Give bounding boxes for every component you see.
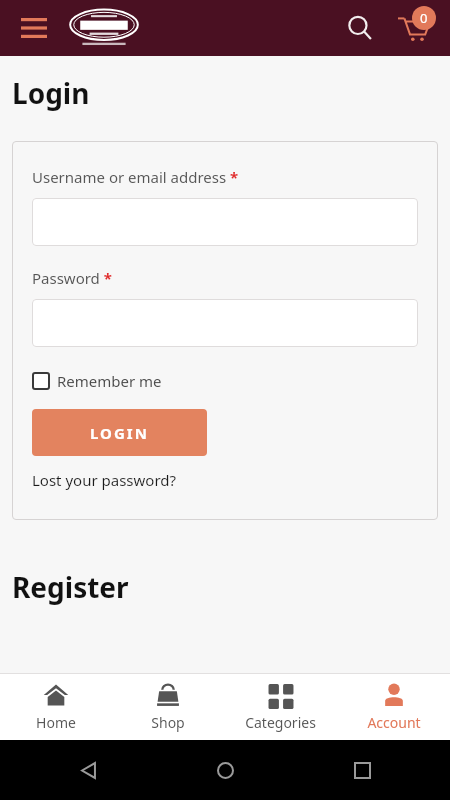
- button[interactable]: Recent apps: [344, 752, 380, 788]
- button[interactable]: Cart, 0 items: [390, 4, 438, 52]
- staticText: Home: [36, 713, 76, 732]
- button[interactable]: Categories: [224, 674, 337, 740]
- button[interactable]: [32, 299, 418, 347]
- staticText: Categories: [245, 713, 316, 732]
- staticText: Account: [367, 713, 421, 732]
- button[interactable]: Shop: [112, 674, 224, 740]
- staticText: Register: [12, 568, 129, 606]
- staticText: 0: [420, 9, 428, 27]
- staticText: Username or email address *: [32, 167, 239, 187]
- button[interactable]: Back: [70, 752, 106, 788]
- staticText: Remember me: [57, 371, 162, 391]
- button[interactable]: Lost your password?: [32, 470, 177, 490]
- button[interactable]: Account: [337, 674, 450, 740]
- button[interactable]: Menu: [12, 6, 56, 50]
- button[interactable]: Home: [0, 674, 112, 740]
- staticText: Shop: [151, 713, 185, 732]
- staticText: LOGIN: [90, 423, 149, 443]
- button[interactable]: Remember me: [32, 371, 162, 391]
- staticText: Login: [12, 74, 90, 112]
- button[interactable]: Search: [338, 6, 382, 50]
- button[interactable]: LOGIN: [32, 409, 207, 456]
- button[interactable]: [32, 198, 418, 246]
- button[interactable]: Home: [207, 752, 243, 788]
- button[interactable]: Logo: [68, 5, 140, 51]
- staticText: Password *: [32, 268, 112, 288]
